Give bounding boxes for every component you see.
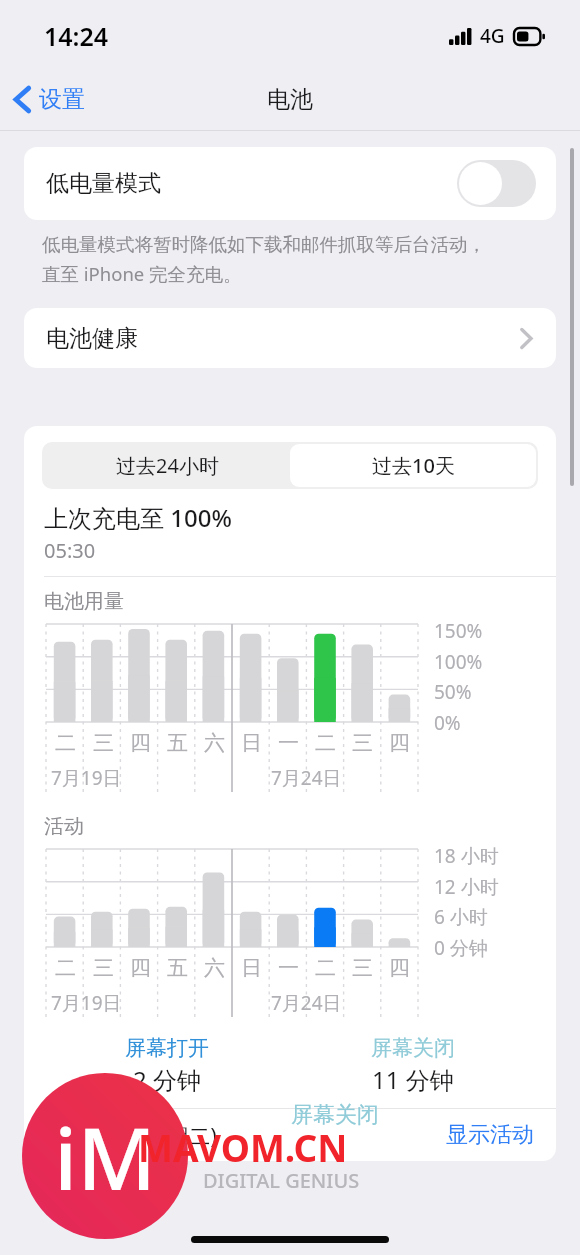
- staticText: 50%: [434, 679, 472, 705]
- button[interactable]: Low Power Mode toggle: [457, 160, 536, 207]
- staticText: 电池用量 (星期二): [44, 1120, 217, 1150]
- staticText: 五: [167, 955, 188, 981]
- staticText: 电池用量: [44, 589, 124, 614]
- staticText: 二: [55, 730, 76, 756]
- staticText: 六: [204, 955, 225, 981]
- staticText: 4G: [480, 23, 505, 49]
- staticText: 一: [278, 730, 299, 756]
- staticText: 电池: [267, 85, 313, 114]
- staticText: 三: [93, 730, 114, 756]
- staticText: MAVOM.CN: [138, 1122, 348, 1172]
- staticText: 屏幕打开: [125, 1035, 209, 1061]
- staticText: 7月19日: [51, 765, 122, 791]
- staticText: 日: [241, 955, 262, 981]
- staticText: 低电量模式将暂时降低如下载和邮件抓取等后台活动， 直至 iPhone 完全充电。: [42, 233, 486, 286]
- staticText: 0 分钟: [434, 935, 488, 961]
- staticText: 18 小时: [434, 843, 499, 869]
- staticText: 7月24日: [271, 765, 342, 791]
- staticText: 屏幕关闭: [291, 1101, 379, 1129]
- staticText: 2 分钟: [133, 1063, 201, 1096]
- staticText: 四: [389, 955, 410, 981]
- staticText: 活动: [44, 814, 84, 839]
- staticText: 150%: [434, 618, 483, 644]
- button[interactable]: 电池健康: [24, 308, 556, 368]
- staticText: 四: [389, 730, 410, 756]
- staticText: iM: [54, 1098, 157, 1215]
- staticText: 三: [93, 955, 114, 981]
- staticText: 六: [204, 730, 225, 756]
- staticText: 三: [352, 730, 373, 756]
- staticText: 二: [315, 955, 336, 981]
- staticText: 12 小时: [434, 874, 499, 900]
- staticText: 屏幕关闭: [371, 1035, 455, 1061]
- staticText: 05:30: [44, 537, 96, 564]
- staticText: 14:24: [44, 19, 109, 53]
- button[interactable]: 电池用量 (星期二): [24, 1109, 556, 1161]
- staticText: 五: [167, 730, 188, 756]
- staticText: 一: [278, 955, 299, 981]
- button[interactable]: 低电量模式: [24, 147, 556, 220]
- button[interactable]: 设置: [0, 79, 97, 120]
- staticText: 过去10天: [372, 452, 455, 479]
- staticText: 四: [130, 955, 151, 981]
- staticText: 日: [241, 730, 262, 756]
- staticText: 低电量模式: [46, 169, 161, 198]
- staticText: 显示活动: [446, 1121, 534, 1149]
- staticText: 11 分钟: [372, 1063, 454, 1096]
- staticText: 三: [352, 955, 373, 981]
- staticText: 过去24小时: [116, 452, 219, 479]
- button[interactable]: 过去10天: [290, 444, 536, 487]
- staticText: 四: [130, 730, 151, 756]
- staticText: 7月19日: [51, 990, 122, 1016]
- staticText: 0%: [434, 710, 461, 736]
- staticText: 100%: [434, 649, 483, 675]
- staticText: 电池健康: [46, 324, 138, 353]
- staticText: 6 小时: [434, 904, 488, 930]
- staticText: 设置: [39, 85, 85, 114]
- button[interactable]: 过去24小时: [44, 444, 290, 487]
- staticText: 7月24日: [271, 990, 342, 1016]
- staticText: 上次充电至 100%: [44, 501, 232, 534]
- staticText: DIGITAL GENIUS: [203, 1167, 360, 1194]
- staticText: 二: [315, 730, 336, 756]
- staticText: 二: [55, 955, 76, 981]
